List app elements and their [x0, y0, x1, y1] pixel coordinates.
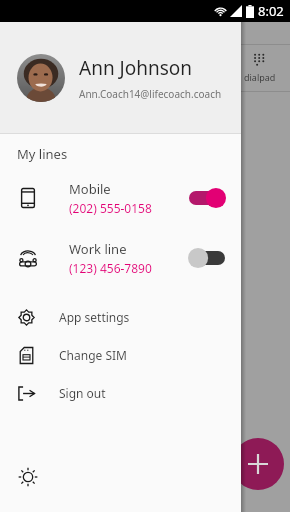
staticText: Ann.Coach14@lifecoach.coach: [79, 87, 222, 101]
staticText: Sign out: [59, 385, 106, 401]
button[interactable]: App settings: [0, 298, 241, 336]
staticText: (202) 555-0158: [69, 200, 152, 216]
button[interactable]: Ann Johnson: [0, 22, 241, 133]
staticText: (123) 456-7890: [69, 260, 152, 276]
button[interactable]: New call: [232, 438, 284, 490]
button[interactable]: Brightness: [13, 462, 43, 492]
button[interactable]: Off: [187, 246, 227, 270]
staticText: App settings: [59, 309, 130, 325]
staticText: 8:02: [258, 2, 284, 20]
button[interactable]: dialpad: [244, 53, 276, 83]
staticText: Work line: [69, 240, 127, 258]
staticText: My lines: [17, 145, 68, 163]
button[interactable]: Work line: [0, 234, 241, 282]
button[interactable]: On: [187, 186, 227, 210]
button[interactable]: Sign out: [0, 374, 241, 412]
button[interactable]: Mobile: [0, 174, 241, 222]
staticText: dialpad: [244, 71, 276, 83]
staticText: Change SIM: [59, 347, 127, 363]
staticText: Mobile: [69, 180, 111, 198]
staticText: Ann Johnson: [79, 55, 193, 81]
button[interactable]: Change SIM: [0, 336, 241, 374]
